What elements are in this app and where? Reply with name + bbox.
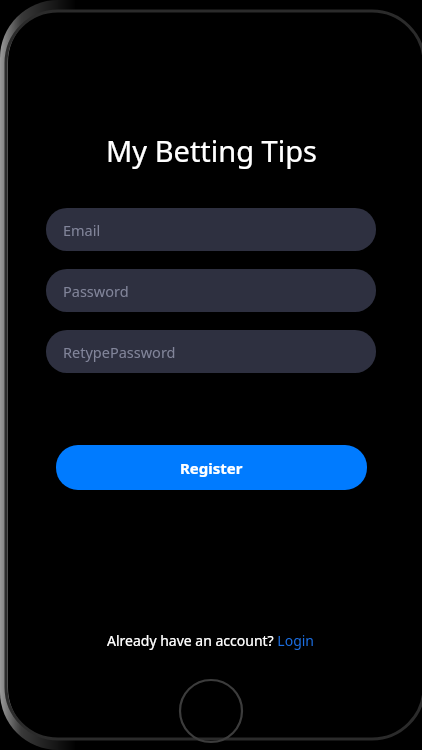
staticText: RetypePassword <box>63 342 176 362</box>
staticText: My Betting Tips <box>106 131 317 170</box>
staticText: Email <box>63 220 101 240</box>
staticText: Register <box>180 458 243 478</box>
button[interactable]: Already have an account? Login <box>99 625 323 656</box>
button[interactable]: Email <box>46 208 376 251</box>
staticText: Already have an account? Login <box>107 631 315 650</box>
button[interactable]: Password <box>46 269 376 312</box>
staticText: Password <box>63 281 129 301</box>
button[interactable]: Register <box>56 445 367 490</box>
button[interactable]: RetypePassword <box>46 330 376 373</box>
button[interactable]: Home <box>178 678 244 744</box>
